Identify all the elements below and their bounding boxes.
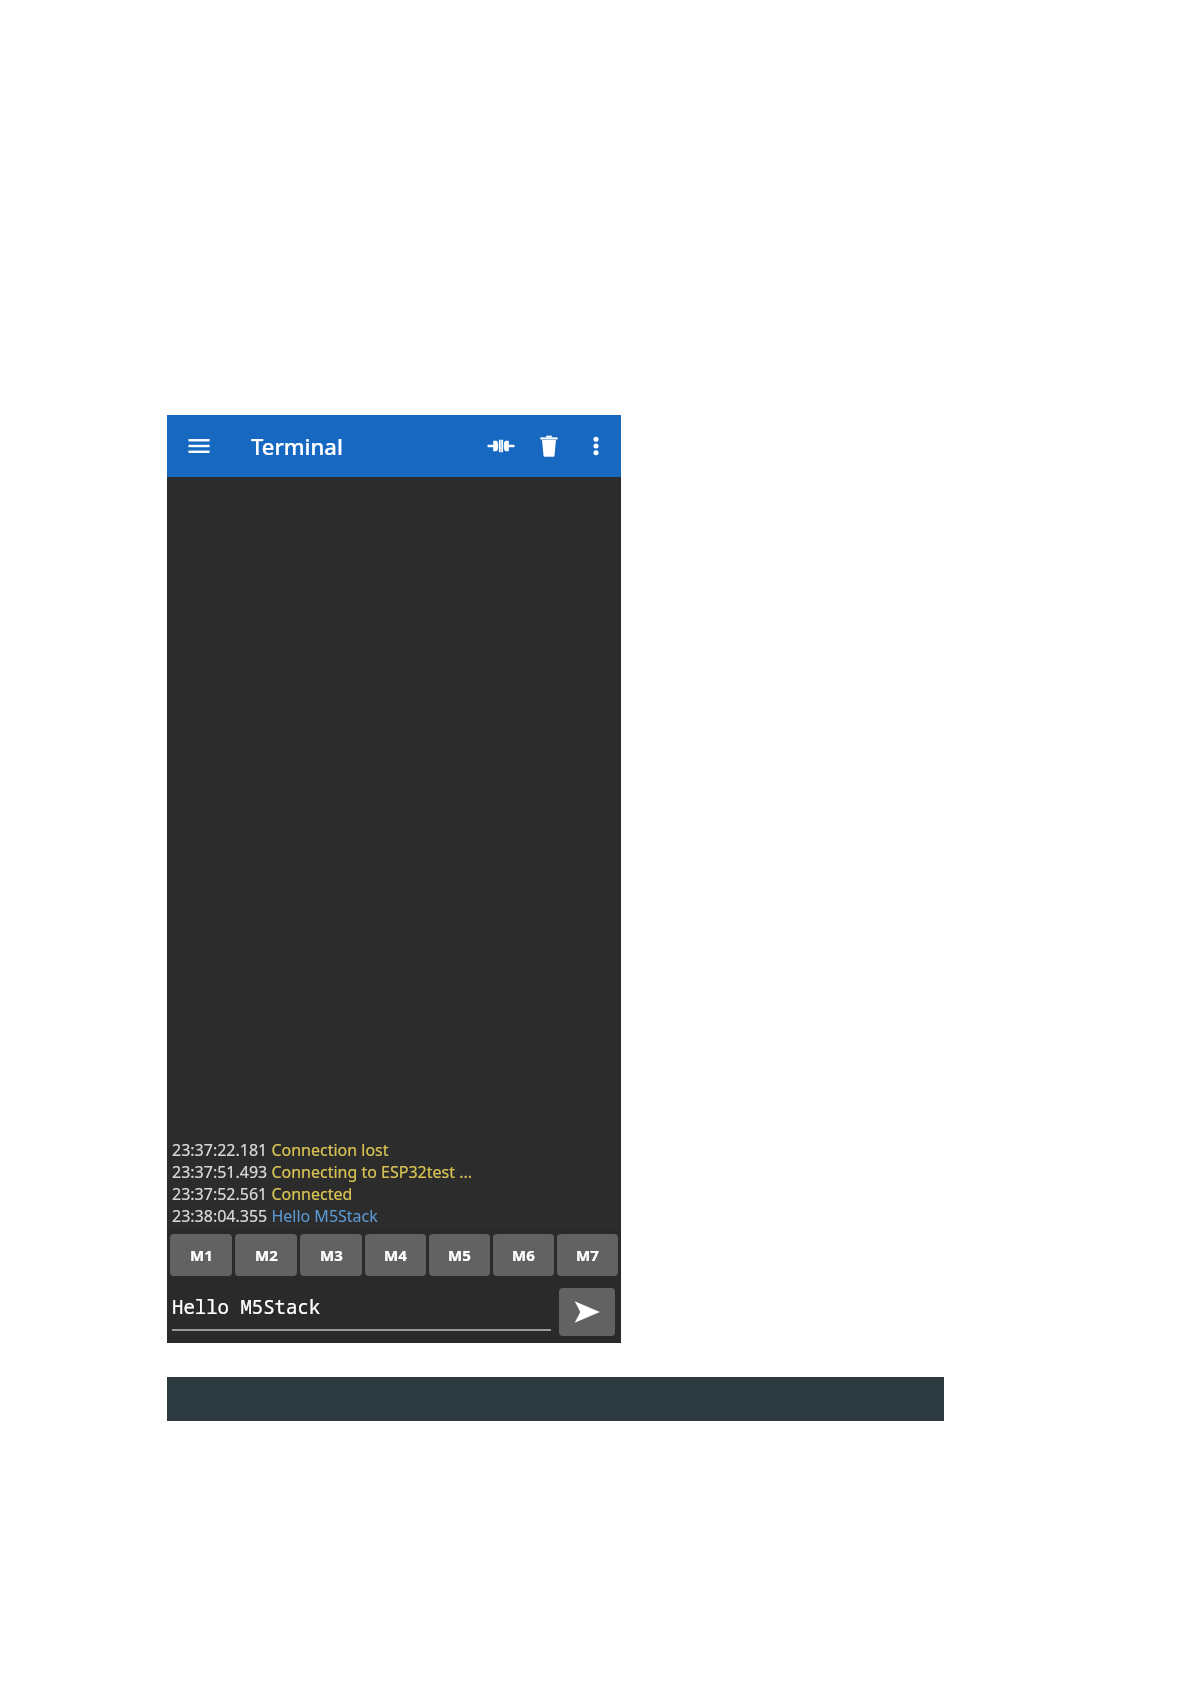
staticText: M4 [384, 1245, 407, 1265]
staticText: M5 [448, 1245, 471, 1265]
staticText: M2 [255, 1245, 278, 1265]
staticText: M6 [512, 1245, 535, 1265]
button[interactable]: M4 [365, 1234, 426, 1276]
button[interactable]: M1 [170, 1234, 232, 1276]
staticText: 23:37:52.561 Connected [172, 1183, 353, 1205]
button[interactable]: More options [573, 423, 619, 469]
staticText: M7 [576, 1245, 599, 1265]
button[interactable]: M2 [235, 1234, 297, 1276]
button[interactable]: Hello M5Stack [172, 1294, 551, 1331]
button[interactable]: M5 [429, 1234, 490, 1276]
staticText: 23:37:22.181 Connection lost [172, 1139, 389, 1161]
staticText: Terminal [251, 431, 343, 461]
button[interactable]: Send [559, 1288, 615, 1336]
button[interactable]: M6 [493, 1234, 554, 1276]
button[interactable]: Open navigation drawer [175, 422, 223, 470]
staticText: 23:37:51.493 Connecting to ESP32test ... [172, 1161, 473, 1183]
staticText: Hello M5Stack [172, 1294, 321, 1320]
button[interactable]: M7 [557, 1234, 618, 1276]
staticText: M1 [190, 1245, 213, 1265]
button[interactable]: Clear [525, 422, 573, 470]
staticText: M3 [320, 1245, 343, 1265]
staticText: 23:38:04.355 Hello M5Stack [172, 1205, 378, 1227]
button[interactable]: M3 [300, 1234, 362, 1276]
button[interactable]: Connect [477, 422, 525, 470]
